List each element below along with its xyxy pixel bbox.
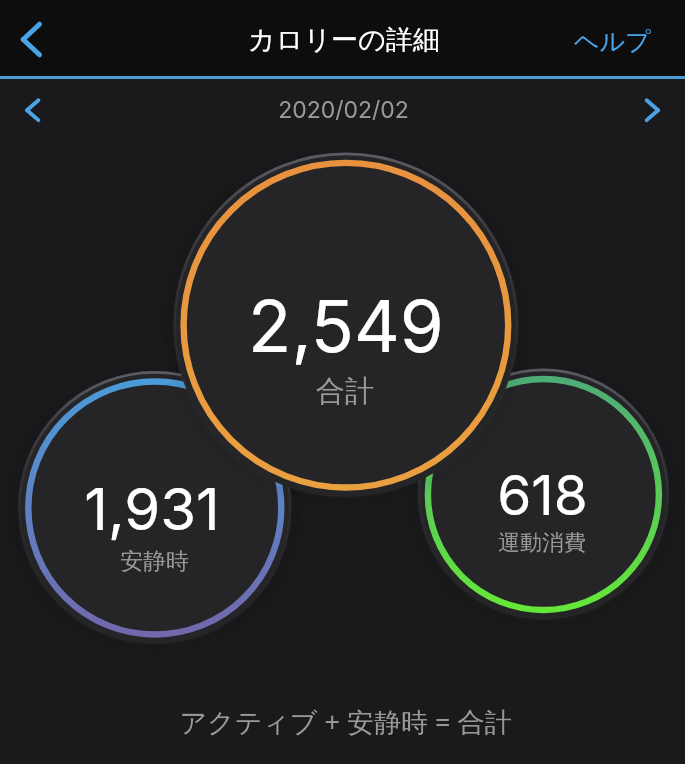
staticText: 2,549 xyxy=(248,283,444,369)
staticText: 2020/02/02 xyxy=(278,96,409,124)
staticText: 安静時 xyxy=(120,547,189,576)
staticText: 運動消費 xyxy=(498,529,586,557)
staticText: 618 xyxy=(497,462,588,529)
staticText: カロリーの詳細 xyxy=(248,23,440,57)
staticText: ヘルプ xyxy=(574,26,651,57)
button[interactable]: Next day xyxy=(623,76,685,138)
button[interactable]: ヘルプ xyxy=(553,10,672,72)
button[interactable]: Previous day xyxy=(0,76,62,138)
button[interactable]: Back xyxy=(0,5,62,67)
staticText: 合計 xyxy=(316,373,374,410)
staticText: 1,931 xyxy=(84,474,220,544)
staticText: アクティブ + 安静時 = 合計 xyxy=(179,703,512,740)
